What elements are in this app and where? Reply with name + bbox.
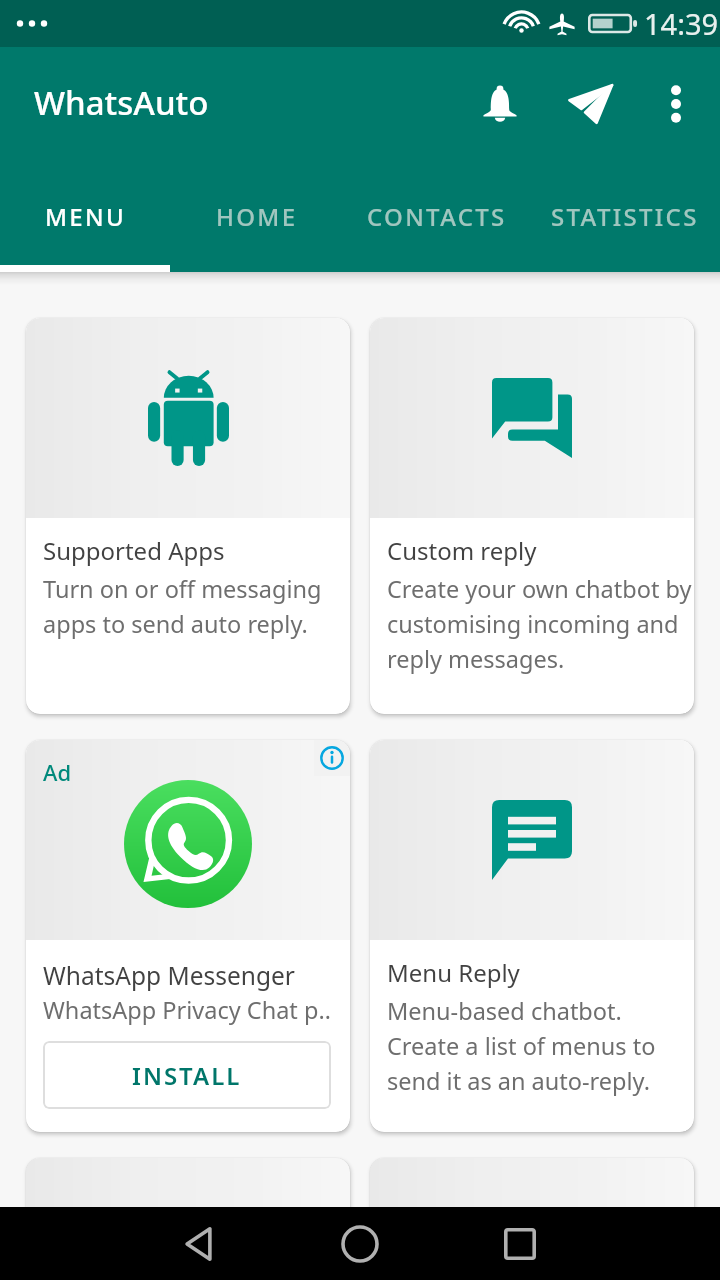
button[interactable]: INSTALL	[43, 1041, 331, 1109]
staticText: HOME	[216, 200, 298, 233]
button[interactable]: Custom reply	[370, 318, 694, 714]
button[interactable]: CONTACTS	[344, 160, 530, 272]
staticText: WhatsApp Privacy Chat p…	[43, 994, 331, 1026]
button[interactable]: More options	[645, 73, 707, 135]
staticText: Menu-based chatbot. Create a list of men…	[387, 995, 692, 1097]
staticText: CONTACTS	[367, 200, 507, 233]
button[interactable]: Home	[320, 1207, 400, 1280]
button[interactable]: More features	[26, 1158, 350, 1280]
staticText: STATISTICS	[551, 200, 699, 233]
button[interactable]: Notifications	[464, 68, 536, 140]
staticText: WhatsAuto	[34, 80, 209, 125]
button[interactable]: Recent apps	[480, 1207, 560, 1280]
button[interactable]: Back	[160, 1207, 240, 1280]
button[interactable]: HOME	[170, 160, 344, 272]
staticText: INSTALL	[132, 1059, 242, 1092]
button[interactable]: More features	[370, 1158, 694, 1280]
staticText: Ad	[43, 757, 72, 787]
button[interactable]: Menu Reply	[370, 740, 694, 1132]
staticText: Menu Reply	[387, 956, 520, 989]
staticText: Turn on or off messaging apps to send au…	[43, 573, 348, 640]
staticText: MENU	[45, 200, 126, 233]
button[interactable]: MENU	[0, 160, 170, 272]
staticText: Create your own chatbot by customising i…	[387, 573, 692, 675]
staticText: Supported Apps	[43, 534, 225, 567]
staticText: WhatsApp Messenger	[43, 959, 295, 992]
button[interactable]: STATISTICS	[530, 160, 720, 272]
staticText: Custom reply	[387, 534, 537, 567]
staticText: 14:39	[644, 4, 719, 43]
button[interactable]: Supported Apps	[26, 318, 350, 714]
button[interactable]: Send	[555, 68, 627, 140]
button[interactable]: Ad	[26, 740, 350, 1132]
